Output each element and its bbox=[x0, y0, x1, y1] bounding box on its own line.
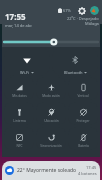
staticText: Batería bbox=[78, 144, 89, 148]
button[interactable]: 22° Mayormente soleado bbox=[2, 161, 100, 180]
staticText: Vertical bbox=[77, 94, 89, 98]
button[interactable]: Sincronización bbox=[36, 127, 66, 150]
staticText: Proteger bbox=[76, 119, 90, 123]
staticText: 22ºC · Despejado bbox=[67, 16, 99, 21]
staticText: 4 botones bbox=[78, 171, 97, 176]
button[interactable]: Ubicación bbox=[36, 102, 66, 125]
button[interactable]: Brightness bbox=[4, 37, 98, 47]
button[interactable]: Vertical bbox=[68, 77, 98, 100]
staticText: Bluetooth bbox=[64, 70, 83, 75]
staticText: Wi-Fi bbox=[20, 70, 30, 75]
staticText: Málaga bbox=[85, 21, 99, 26]
button[interactable]: Mis datos bbox=[4, 77, 34, 100]
staticText: 22° Mayormente soleado bbox=[17, 167, 77, 174]
button[interactable]: Proteger bbox=[68, 102, 98, 125]
staticText: NFC bbox=[16, 144, 23, 148]
staticText: Ubicación bbox=[44, 119, 59, 123]
button[interactable]: Modo avión bbox=[36, 77, 66, 100]
staticText: Mis datos bbox=[12, 94, 27, 98]
button[interactable]: Batería bbox=[68, 127, 98, 150]
button[interactable]: Settings bbox=[78, 7, 86, 15]
staticText: 67% bbox=[63, 8, 71, 13]
staticText: 17:55 bbox=[5, 11, 26, 22]
button[interactable]: Linterna bbox=[4, 102, 34, 125]
button[interactable]: Account bbox=[90, 6, 99, 15]
button[interactable]: NFC bbox=[4, 127, 34, 150]
staticText: Modo avión bbox=[42, 94, 60, 98]
staticText: Sincronización bbox=[40, 144, 62, 148]
button[interactable]: Wi-Fi bbox=[4, 47, 50, 76]
staticText: Linterna bbox=[13, 119, 26, 123]
staticText: 17:45 bbox=[86, 165, 97, 170]
button[interactable]: Bluetooth bbox=[52, 47, 98, 76]
staticText: mar, 14 de abr. bbox=[5, 23, 33, 28]
